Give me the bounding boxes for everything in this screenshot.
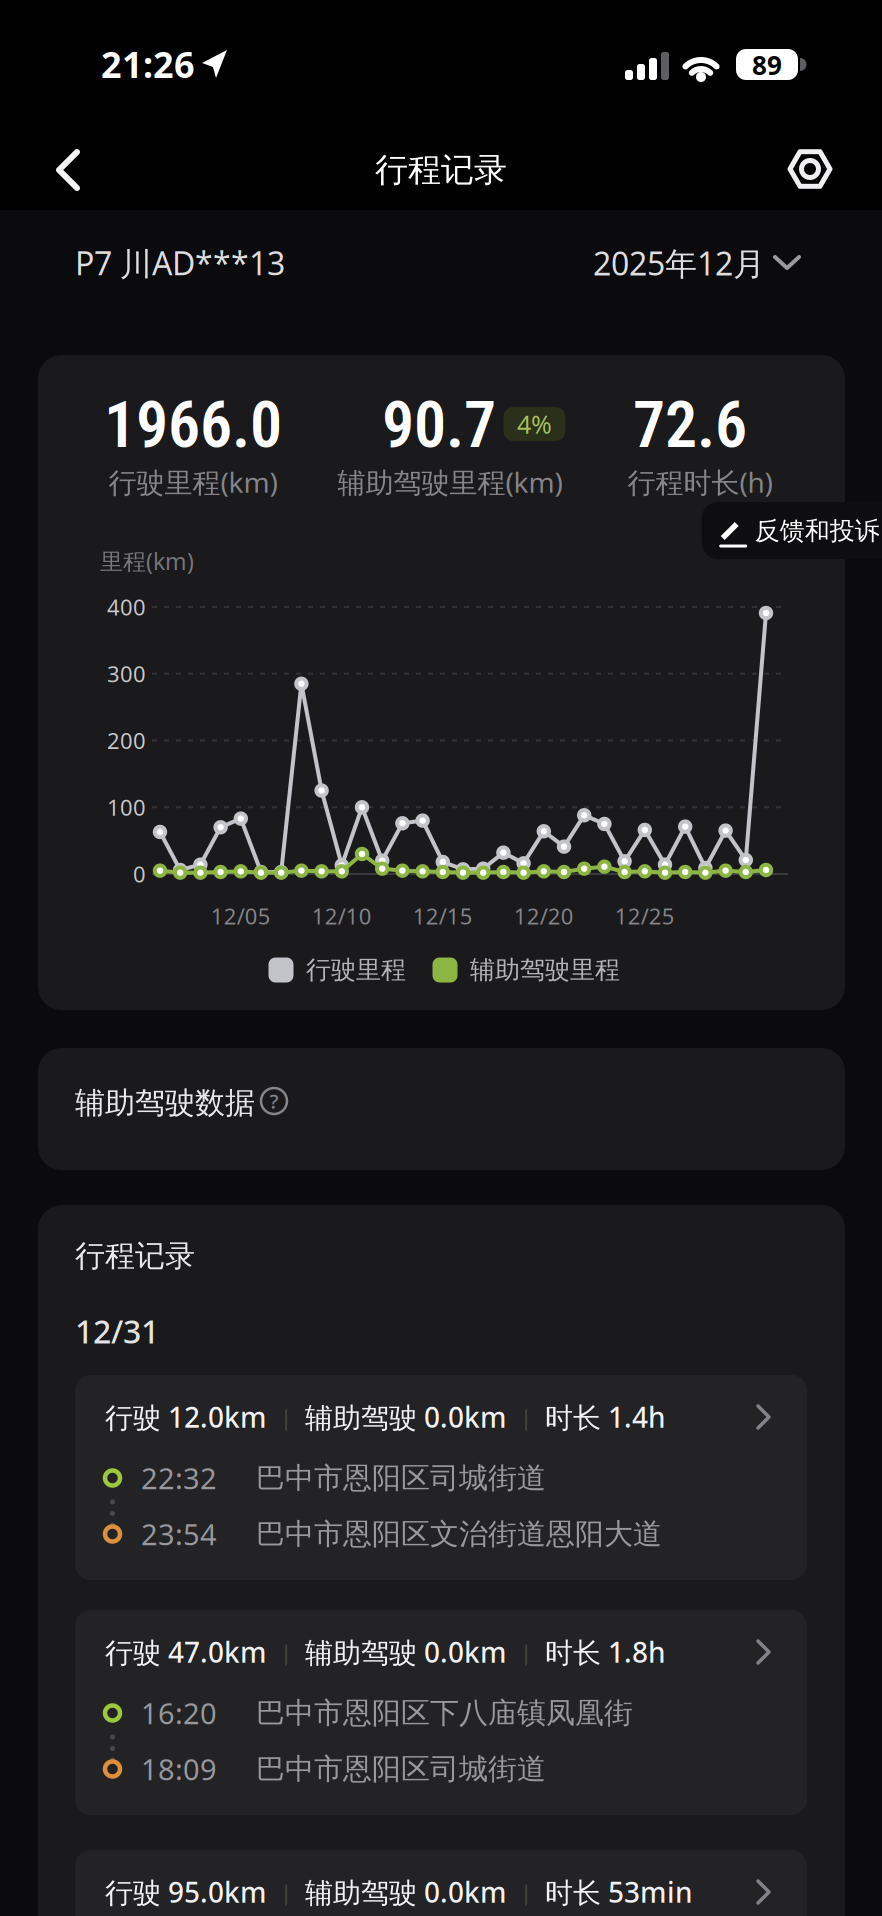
- staticText: |: [520, 1877, 532, 1907]
- staticText: 90.7: [382, 387, 496, 462]
- staticText: 时长 1.4h: [545, 1398, 666, 1436]
- staticText: 16:20: [141, 1693, 217, 1733]
- staticText: 时长 1.8h: [545, 1633, 666, 1671]
- staticText: 辅助驾驶里程: [470, 954, 620, 986]
- staticText: 行驶 95.0km: [105, 1873, 267, 1911]
- staticText: 100: [107, 792, 146, 822]
- staticText: 1966.0: [104, 387, 282, 462]
- staticText: 辅助驾驶 0.0km: [305, 1873, 507, 1911]
- button[interactable]: 辅助驾驶数据: [38, 1048, 845, 1170]
- staticText: 400: [107, 592, 146, 622]
- staticText: |: [520, 1402, 532, 1432]
- staticText: 巴中市恩阳区司城街道: [256, 1751, 546, 1787]
- staticText: 巴中市恩阳区下八庙镇凤凰街: [256, 1695, 633, 1731]
- staticText: 里程(km): [100, 545, 194, 577]
- staticText: 23:54: [141, 1514, 217, 1554]
- staticText: 72.6: [633, 387, 747, 462]
- staticText: |: [280, 1877, 292, 1907]
- staticText: 辅助驾驶数据: [75, 1084, 255, 1122]
- staticText: ?: [269, 1087, 278, 1115]
- staticText: 12/20: [514, 901, 574, 931]
- staticText: 辅助驾驶 0.0km: [305, 1633, 507, 1671]
- staticText: 12/31: [75, 1309, 159, 1353]
- staticText: 行驶里程(km): [108, 463, 277, 501]
- staticText: |: [520, 1637, 532, 1667]
- staticText: 反馈和投诉: [755, 515, 880, 547]
- staticText: 行程记录: [75, 1237, 195, 1275]
- button[interactable]: Back: [57, 150, 81, 190]
- button[interactable]: 反馈和投诉: [702, 502, 882, 559]
- staticText: 12/05: [211, 901, 271, 931]
- button[interactable]: 行驶 47.0km: [75, 1610, 807, 1815]
- staticText: 行驶里程: [306, 954, 406, 986]
- staticText: 89: [752, 47, 782, 83]
- button[interactable]: 行驶 12.0km: [75, 1375, 807, 1580]
- staticText: 12/25: [615, 901, 675, 931]
- staticText: 12/10: [312, 901, 372, 931]
- staticText: |: [280, 1637, 292, 1667]
- staticText: 行驶 47.0km: [105, 1633, 267, 1671]
- staticText: P7 川AD***13: [75, 241, 285, 285]
- button[interactable]: 行驶 95.0km: [75, 1850, 807, 1916]
- staticText: 0: [133, 859, 146, 889]
- staticText: 18:09: [141, 1749, 217, 1789]
- staticText: 行程记录: [375, 149, 507, 191]
- staticText: 行驶 12.0km: [105, 1398, 267, 1436]
- button[interactable]: P7 川AD***13: [75, 241, 475, 285]
- staticText: 行程时长(h): [627, 463, 772, 501]
- staticText: 22:32: [141, 1458, 217, 1498]
- button[interactable]: Settings: [788, 150, 832, 188]
- staticText: 时长 53min: [545, 1873, 693, 1911]
- staticText: 4%: [517, 407, 552, 441]
- staticText: 200: [107, 725, 146, 755]
- staticText: |: [280, 1402, 292, 1432]
- button[interactable]: 2025年12月: [593, 241, 801, 285]
- staticText: 12/15: [413, 901, 473, 931]
- staticText: 2025年12月: [593, 241, 765, 285]
- staticText: 辅助驾驶里程(km): [337, 463, 562, 501]
- staticText: 21:26: [101, 39, 195, 88]
- staticText: 巴中市恩阳区司城街道: [256, 1460, 546, 1496]
- staticText: 巴中市恩阳区文治街道恩阳大道: [256, 1516, 662, 1552]
- staticText: 辅助驾驶 0.0km: [305, 1398, 507, 1436]
- staticText: 300: [107, 659, 146, 689]
